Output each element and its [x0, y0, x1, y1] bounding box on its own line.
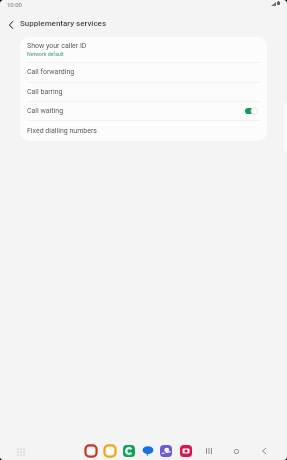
staticText: Call forwarding: [27, 68, 75, 76]
button[interactable]: My Files: [104, 445, 116, 457]
button[interactable]: Call waiting switch: [245, 107, 258, 115]
staticText: Supplementary services: [20, 19, 107, 28]
button[interactable]: Messages: [142, 445, 154, 457]
staticText: 10:00: [7, 1, 22, 8]
button[interactable]: Back: [256, 443, 272, 459]
button[interactable]: All apps: [12, 443, 29, 460]
button[interactable]: Fixed dialling numbers: [20, 120, 267, 141]
button[interactable]: Call forwarding: [20, 62, 267, 82]
button[interactable]: Camera: [180, 445, 192, 457]
button[interactable]: Phone: [123, 445, 135, 457]
staticText: Call waiting: [27, 107, 64, 115]
button[interactable]: Show your caller ID: [20, 37, 267, 62]
button[interactable]: Home: [228, 443, 244, 459]
button[interactable]: Call waiting: [20, 101, 267, 120]
staticText: Show your caller ID: [27, 42, 87, 50]
button[interactable]: Internet: [160, 445, 172, 457]
button[interactable]: Samsung Notes: [85, 445, 97, 457]
staticText: Fixed dialling numbers: [27, 127, 97, 135]
staticText: Call barring: [27, 88, 63, 96]
staticText: Network default: [27, 51, 64, 57]
button[interactable]: Call barring: [20, 82, 267, 102]
button[interactable]: Navigate up: [2, 16, 20, 34]
button[interactable]: Recent apps: [201, 443, 217, 459]
